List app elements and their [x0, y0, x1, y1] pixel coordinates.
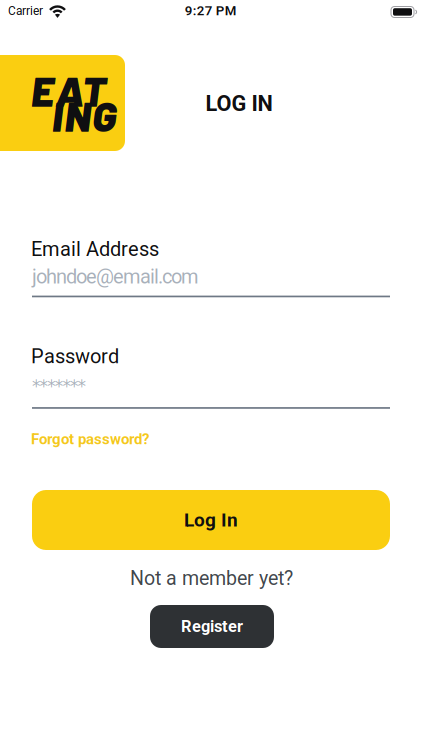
- staticText: Not a member yet?: [130, 567, 293, 590]
- staticText: johndoe@email.com: [32, 265, 199, 288]
- staticText: 9:27 PM: [185, 3, 237, 19]
- staticText: Carrier: [8, 4, 43, 18]
- staticText: EAT: [31, 65, 106, 115]
- staticText: ING: [52, 90, 117, 140]
- button[interactable]: Log In: [32, 490, 390, 550]
- staticText: LOG IN: [205, 91, 272, 116]
- button[interactable]: Register: [150, 605, 274, 648]
- button[interactable]: Forgot password?: [31, 430, 149, 448]
- staticText: *******: [32, 376, 87, 396]
- button[interactable]: Password: [32, 376, 390, 410]
- staticText: Log In: [184, 509, 238, 531]
- staticText: Password: [31, 345, 119, 368]
- staticText: Email Address: [31, 237, 159, 261]
- staticText: Register: [181, 617, 243, 636]
- staticText: Forgot password?: [31, 430, 149, 448]
- button[interactable]: Email Address: [32, 265, 390, 298]
